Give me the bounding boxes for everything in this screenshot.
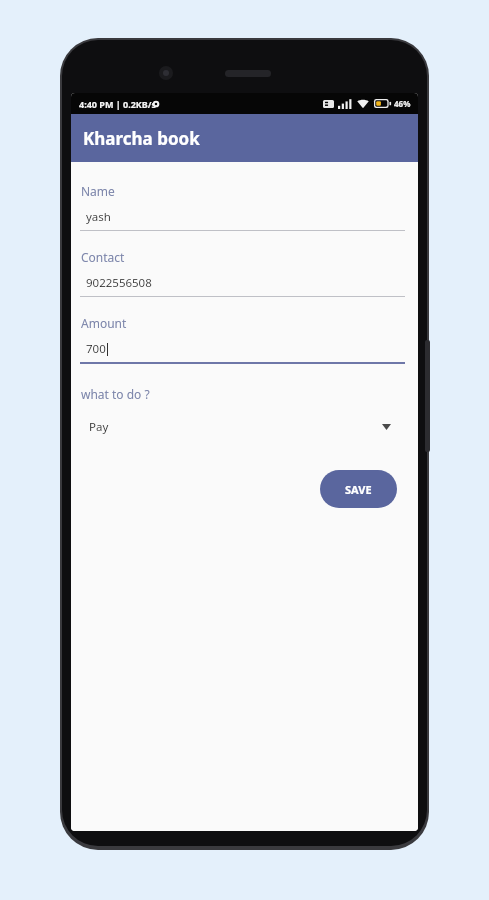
staticText: what to do ? — [81, 386, 150, 402]
staticText: SAVE — [345, 482, 372, 497]
button[interactable]: SAVE — [320, 470, 397, 508]
staticText: 46% — [394, 98, 411, 109]
staticText: Contact — [81, 249, 125, 265]
button[interactable]: Contact — [80, 249, 409, 297]
staticText: 9022556508 — [86, 275, 152, 291]
staticText: 700 — [86, 341, 106, 357]
staticText: yash — [86, 209, 111, 225]
staticText: 4:40 PM | 0.2KB/s — [79, 98, 157, 110]
button[interactable]: Name — [80, 183, 409, 231]
button[interactable]: Pay — [80, 414, 409, 440]
staticText: Pay — [89, 419, 109, 435]
button[interactable]: Amount — [80, 315, 409, 364]
staticText: Kharcha book — [83, 127, 200, 150]
staticText: Amount — [81, 315, 127, 331]
staticText: Name — [81, 183, 115, 199]
